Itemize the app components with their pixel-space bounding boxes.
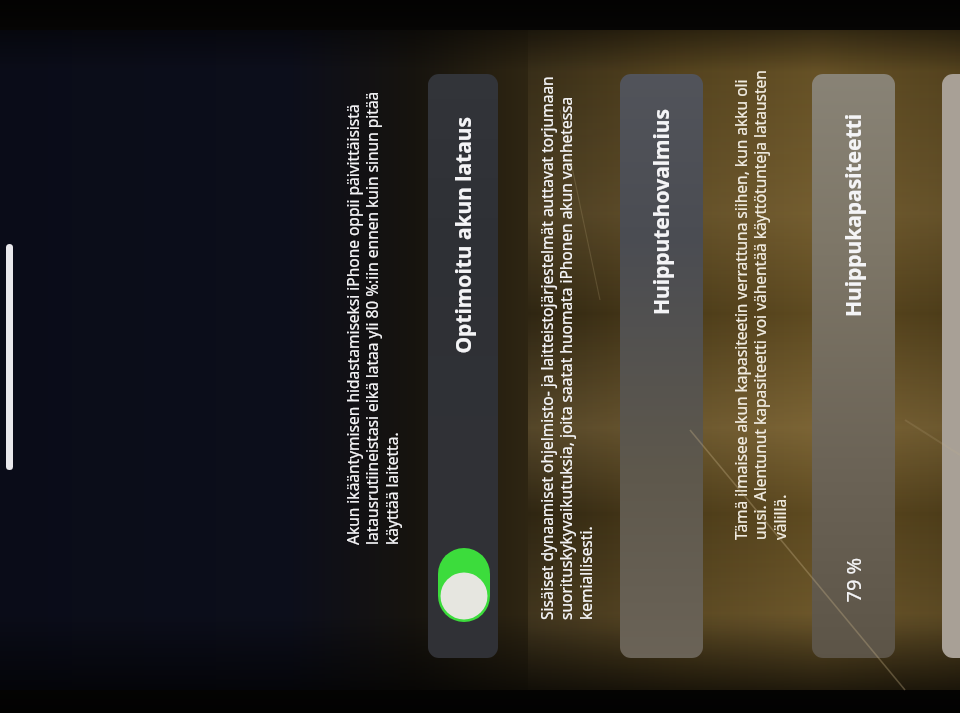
button[interactable]: Battery Health settings screen bbox=[0, 0, 960, 713]
